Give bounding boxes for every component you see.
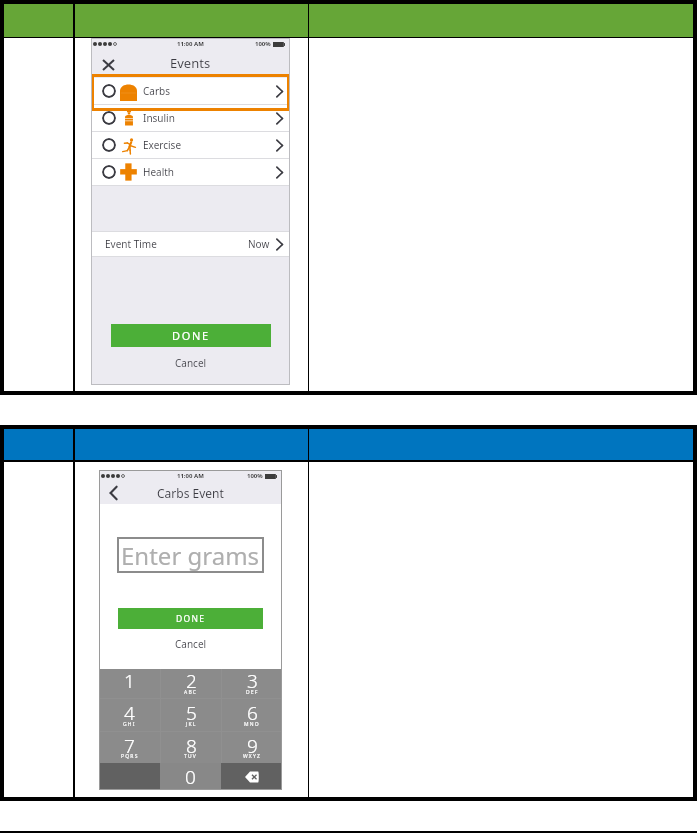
button[interactable]: DONE [111, 324, 271, 347]
button[interactable]: Exercise [91, 132, 290, 158]
staticText: 5 [186, 700, 197, 726]
staticText: 11:00 AM [177, 472, 204, 480]
staticText: Carbs [143, 84, 170, 98]
button[interactable]: 1 [99, 669, 160, 698]
staticText: 1 [124, 668, 135, 694]
button[interactable]: Carbs [91, 78, 290, 104]
staticText: PQRS [121, 753, 139, 760]
button[interactable]: Cancel [165, 354, 217, 372]
staticText: Now [248, 237, 270, 251]
button[interactable]: 0 [160, 763, 221, 790]
button[interactable]: 4 [99, 699, 160, 731]
staticText: MNO [244, 721, 260, 728]
button[interactable]: Insulin [91, 105, 290, 131]
staticText: 3 [247, 668, 258, 694]
staticText: 2 [186, 668, 197, 694]
staticText: Event Time [105, 237, 157, 251]
button[interactable]: 2 [161, 669, 221, 698]
staticText: Enter grams [121, 539, 260, 572]
button[interactable]: 8 [161, 732, 221, 763]
button[interactable]: Back [105, 485, 121, 501]
button[interactable]: 5 [161, 699, 221, 731]
staticText: 100% [247, 472, 263, 480]
staticText: GHI [123, 721, 136, 728]
staticText: Health [143, 165, 175, 179]
staticText: Insulin [143, 111, 175, 125]
button[interactable]: 3 [222, 669, 282, 698]
staticText: 11:00 AM [177, 40, 204, 48]
staticText: DONE [176, 613, 206, 625]
staticText: DONE [172, 328, 210, 343]
staticText: ABC [184, 689, 198, 696]
button[interactable]: 7 [99, 732, 160, 763]
staticText: Cancel [175, 637, 207, 651]
staticText: 9 [247, 733, 258, 759]
staticText: 4 [124, 700, 135, 726]
staticText: Exercise [143, 138, 182, 152]
staticText: 100% [255, 40, 271, 48]
staticText: WXYZ [243, 753, 262, 760]
button[interactable] [99, 763, 160, 790]
button[interactable]: 9 [222, 732, 282, 763]
button[interactable]: Enter grams [117, 537, 264, 573]
button[interactable]: DONE [118, 608, 263, 629]
staticText: TUV [184, 753, 198, 760]
button[interactable]: Close [99, 56, 117, 74]
button[interactable]: Event Time [91, 232, 290, 256]
staticText: DEF [246, 689, 259, 696]
staticText: 8 [186, 733, 197, 759]
staticText: 6 [247, 700, 258, 726]
button[interactable]: Health [91, 159, 290, 185]
button[interactable]: Cancel [165, 635, 217, 653]
staticText: Cancel [175, 356, 207, 370]
staticText: 7 [124, 733, 135, 759]
staticText: Events [170, 54, 211, 72]
button[interactable]: Backspace [221, 763, 282, 790]
staticText: JKL [186, 721, 197, 728]
button[interactable]: 6 [222, 699, 282, 731]
staticText: 0 [185, 764, 196, 790]
staticText: Carbs Event [157, 485, 224, 501]
